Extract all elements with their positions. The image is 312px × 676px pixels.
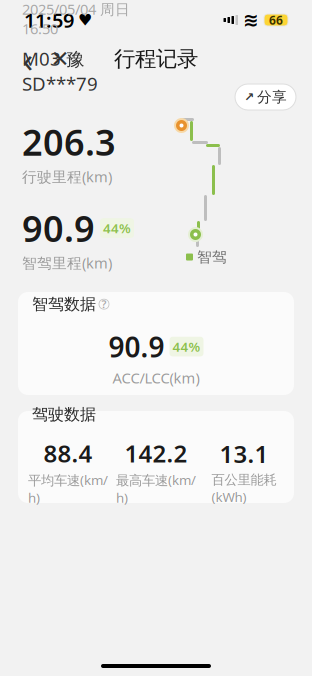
staticText: 90.9 <box>22 204 95 252</box>
staticText: 88.4 <box>43 437 92 469</box>
button[interactable]: 返回 <box>12 41 44 77</box>
button[interactable]: ↗ <box>235 84 296 110</box>
staticText: 智驾数据 <box>32 294 96 314</box>
staticText: ♥ <box>78 11 92 29</box>
staticText: ≋ <box>243 9 259 31</box>
button[interactable]: 关闭 <box>44 41 76 77</box>
staticText: 智驾里程(km) <box>22 253 112 272</box>
staticText: 66 <box>269 12 283 28</box>
staticText: 11:59 <box>24 7 74 33</box>
staticText: 142.2 <box>124 437 187 469</box>
staticText: 驾驶数据 <box>32 404 96 424</box>
staticText: 206.3 <box>22 118 116 166</box>
staticText: ↗ <box>244 90 254 104</box>
staticText: 智驾 <box>197 248 227 266</box>
staticText: 2.4 <box>22 290 74 338</box>
staticText: 90.9 <box>108 328 164 365</box>
staticText: 44% <box>172 338 200 355</box>
staticText: 2025/05/04 周日 16:50 <box>22 0 130 38</box>
staticText: 最高车速(km/h) <box>116 471 196 506</box>
staticText: 行驶里程(km) <box>22 167 112 186</box>
staticText: 百公里能耗(kWh) <box>211 472 276 506</box>
staticText: ACC/LCC(km) <box>112 368 199 388</box>
staticText: ? <box>101 297 106 311</box>
staticText: ✕ <box>50 46 69 72</box>
staticText: M03 豫SD***79 <box>22 46 98 96</box>
staticText: ‹ <box>22 36 33 82</box>
staticText: 44% <box>103 219 131 237</box>
staticText: 平均车速(km/h) <box>28 471 108 506</box>
staticText: 行程记录 <box>114 46 198 72</box>
staticText: 分享 <box>257 88 287 106</box>
staticText: 13.1 <box>219 438 268 470</box>
